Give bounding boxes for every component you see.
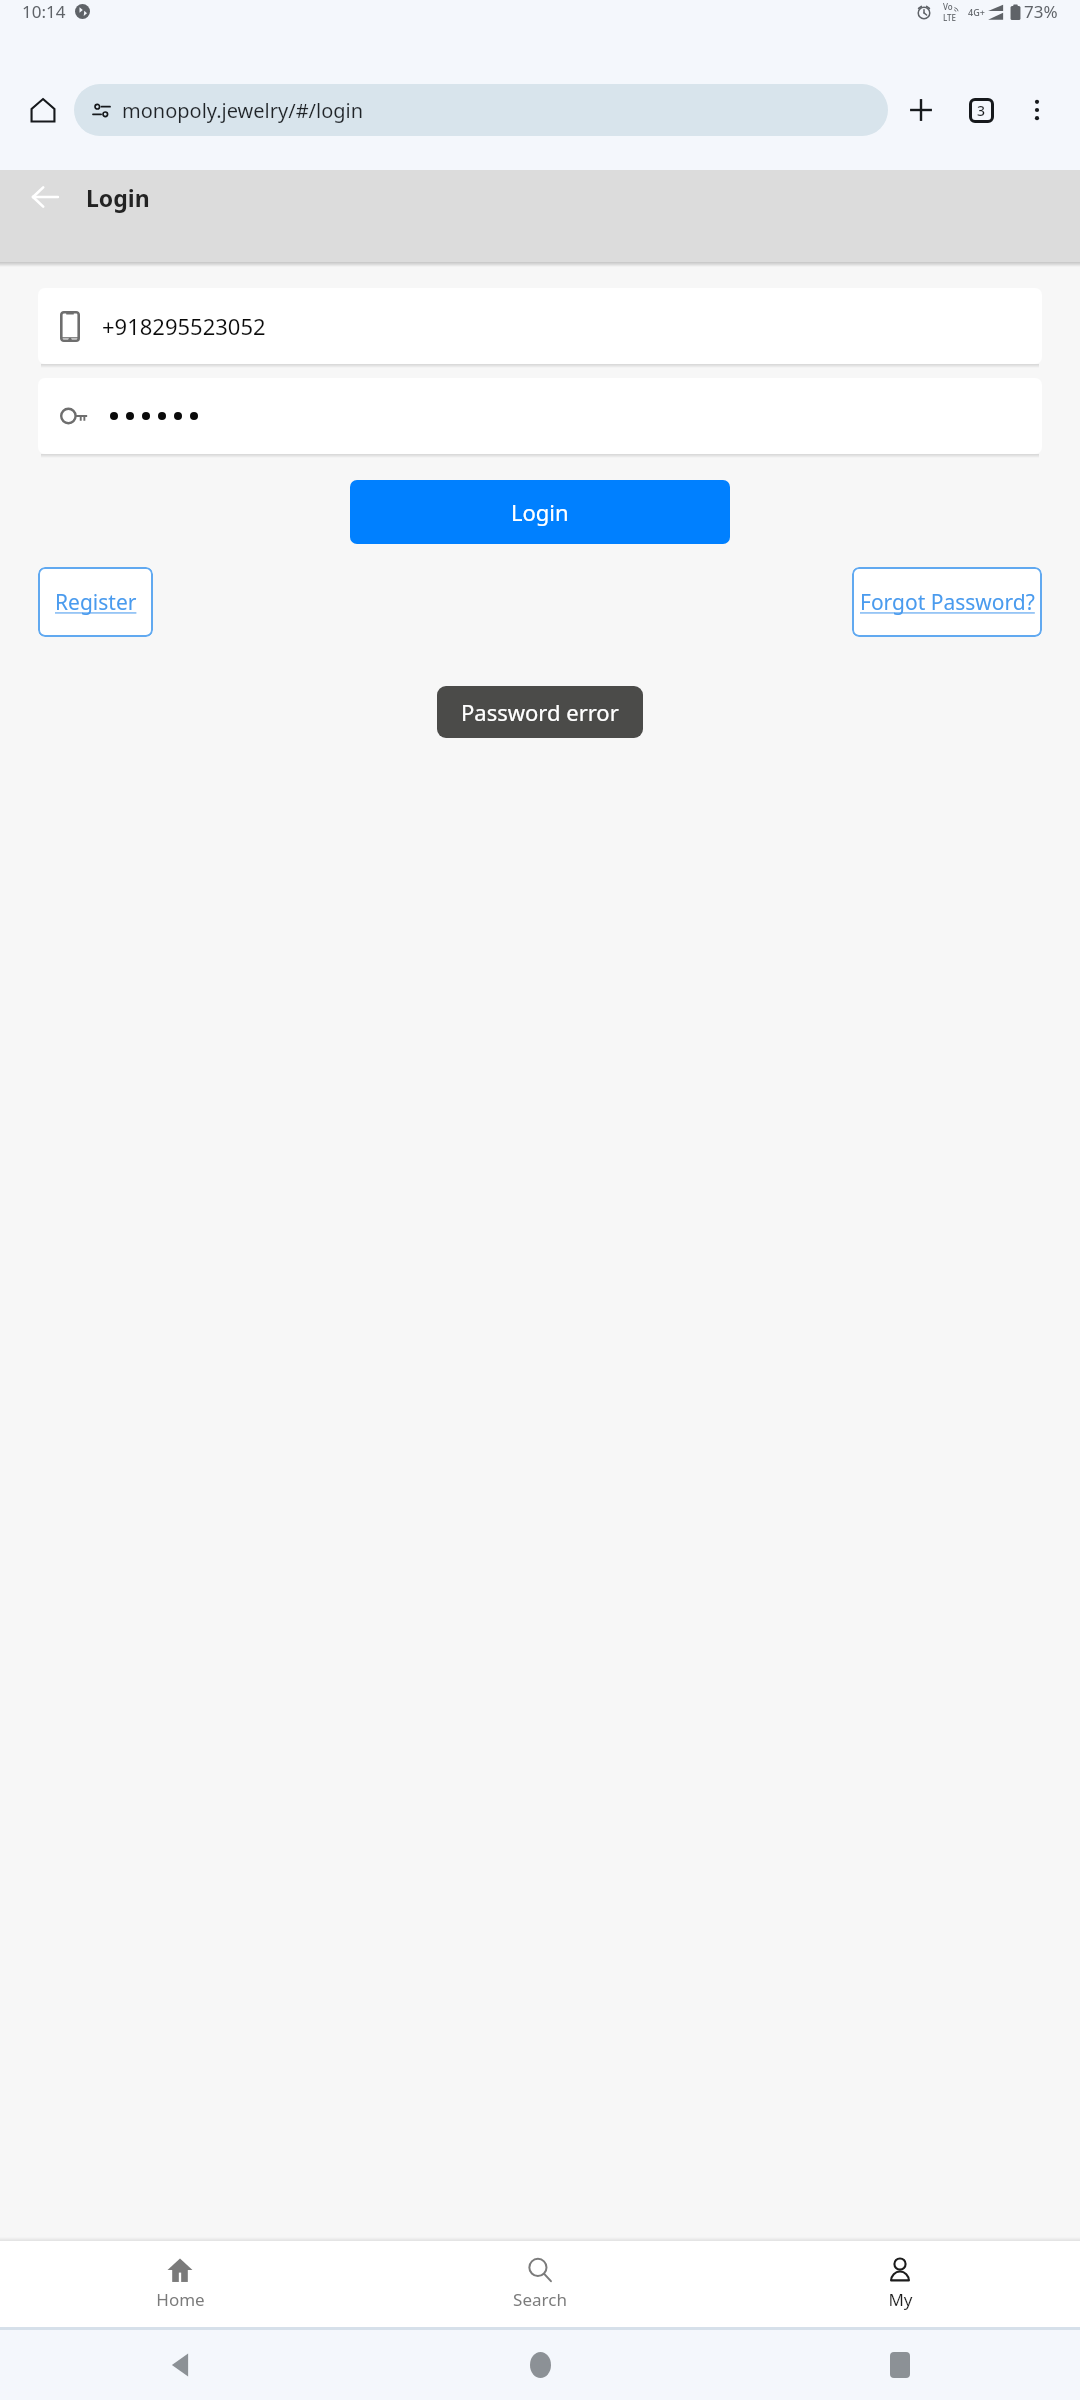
staticText: +918295523052 [102, 311, 266, 341]
button[interactable]: Home [518, 2343, 562, 2387]
button[interactable]: More options [1014, 87, 1060, 133]
button[interactable]: Back [158, 2343, 202, 2387]
button[interactable]: Register [38, 567, 153, 637]
staticText: Password error [461, 697, 619, 727]
staticText: Login [511, 497, 569, 527]
staticText: 4G+ [968, 6, 985, 18]
button[interactable]: New tab [898, 87, 944, 133]
staticText: 10:14 [22, 0, 66, 23]
button[interactable] [38, 378, 1042, 454]
staticText: 73% [1024, 0, 1058, 23]
button[interactable]: Search [360, 2249, 720, 2319]
staticText: Search [513, 2288, 567, 2311]
staticText: 3 [977, 101, 986, 120]
staticText: Vo [943, 1, 953, 12]
button[interactable]: +918295523052 [38, 288, 1042, 364]
button[interactable]: Home [0, 2249, 360, 2319]
button[interactable]: Back [18, 170, 72, 224]
staticText: LTE [943, 12, 957, 23]
staticText: Login [86, 182, 150, 213]
button[interactable]: Forgot Password? [852, 567, 1042, 637]
staticText: monopoly.jewelry/#/login [122, 97, 364, 124]
staticText: Home [156, 2288, 205, 2311]
button[interactable]: Tabs: 3 [958, 87, 1004, 133]
button[interactable]: monopoly.jewelry/#/login [74, 84, 888, 136]
staticText: My [888, 2288, 913, 2311]
button[interactable]: Recent apps [878, 2343, 922, 2387]
staticText: Register [55, 588, 137, 617]
button[interactable]: My [720, 2249, 1080, 2319]
staticText: Forgot Password? [860, 588, 1035, 617]
button[interactable]: Login [350, 480, 730, 544]
button[interactable]: Home [20, 87, 66, 133]
